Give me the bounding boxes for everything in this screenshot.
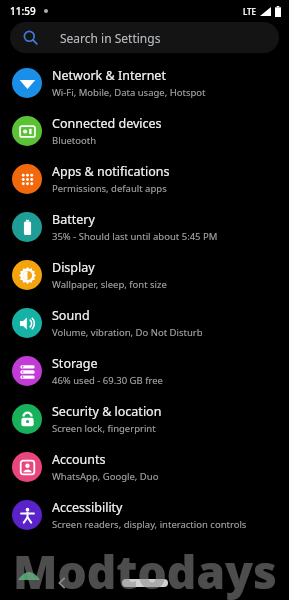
staticText: Wi-Fi, Mobile, Data usage, Hotspot [52, 86, 206, 99]
staticText: WhatsApp, Google, Duo [52, 470, 159, 483]
staticText: Volume, vibration, Do Not Disturb [52, 326, 203, 339]
button[interactable]: Back [56, 577, 68, 589]
staticText: Screen lock, fingerprint [52, 422, 156, 435]
button[interactable]: Accounts [0, 443, 289, 491]
staticText: 11:59 [10, 4, 36, 18]
staticText: Apps & notifications [52, 163, 170, 180]
staticText: Connected devices [52, 115, 162, 132]
button[interactable]: Accessibility [0, 491, 289, 539]
button[interactable]: Apps & notifications [0, 155, 289, 203]
staticText: Security & location [52, 403, 162, 420]
staticText: Accounts [52, 451, 106, 468]
staticText: Wallpaper, sleep, font size [52, 278, 167, 291]
staticText: 35% - Should last until about 5:45 PM [52, 230, 218, 243]
staticText: Search in Settings [60, 30, 161, 46]
staticText: Modtodays [13, 540, 277, 600]
staticText: Accessibility [52, 499, 123, 516]
staticText: Permissions, default apps [52, 182, 167, 195]
button[interactable]: Connected devices [0, 107, 289, 155]
staticText: Sound [52, 307, 90, 324]
staticText: LTE [243, 6, 257, 17]
staticText: Battery [52, 211, 95, 228]
button[interactable]: Network & Internet [0, 59, 289, 107]
button[interactable]: Search [10, 22, 279, 53]
staticText: 46% used - 69.30 GB free [52, 374, 163, 387]
button[interactable]: Storage [0, 347, 289, 395]
button[interactable]: Home [122, 579, 168, 587]
staticText: Screen readers, display, interaction con… [52, 518, 247, 531]
button[interactable]: Security & location [0, 395, 289, 443]
staticText: Bluetooth [52, 134, 97, 147]
other: Search [23, 30, 38, 45]
staticText: Storage [52, 355, 98, 372]
staticText: Display [52, 259, 95, 276]
staticText: Network & Internet [52, 67, 166, 84]
button[interactable]: Sound [0, 299, 289, 347]
button[interactable]: Battery [0, 203, 289, 251]
button[interactable]: Display [0, 251, 289, 299]
